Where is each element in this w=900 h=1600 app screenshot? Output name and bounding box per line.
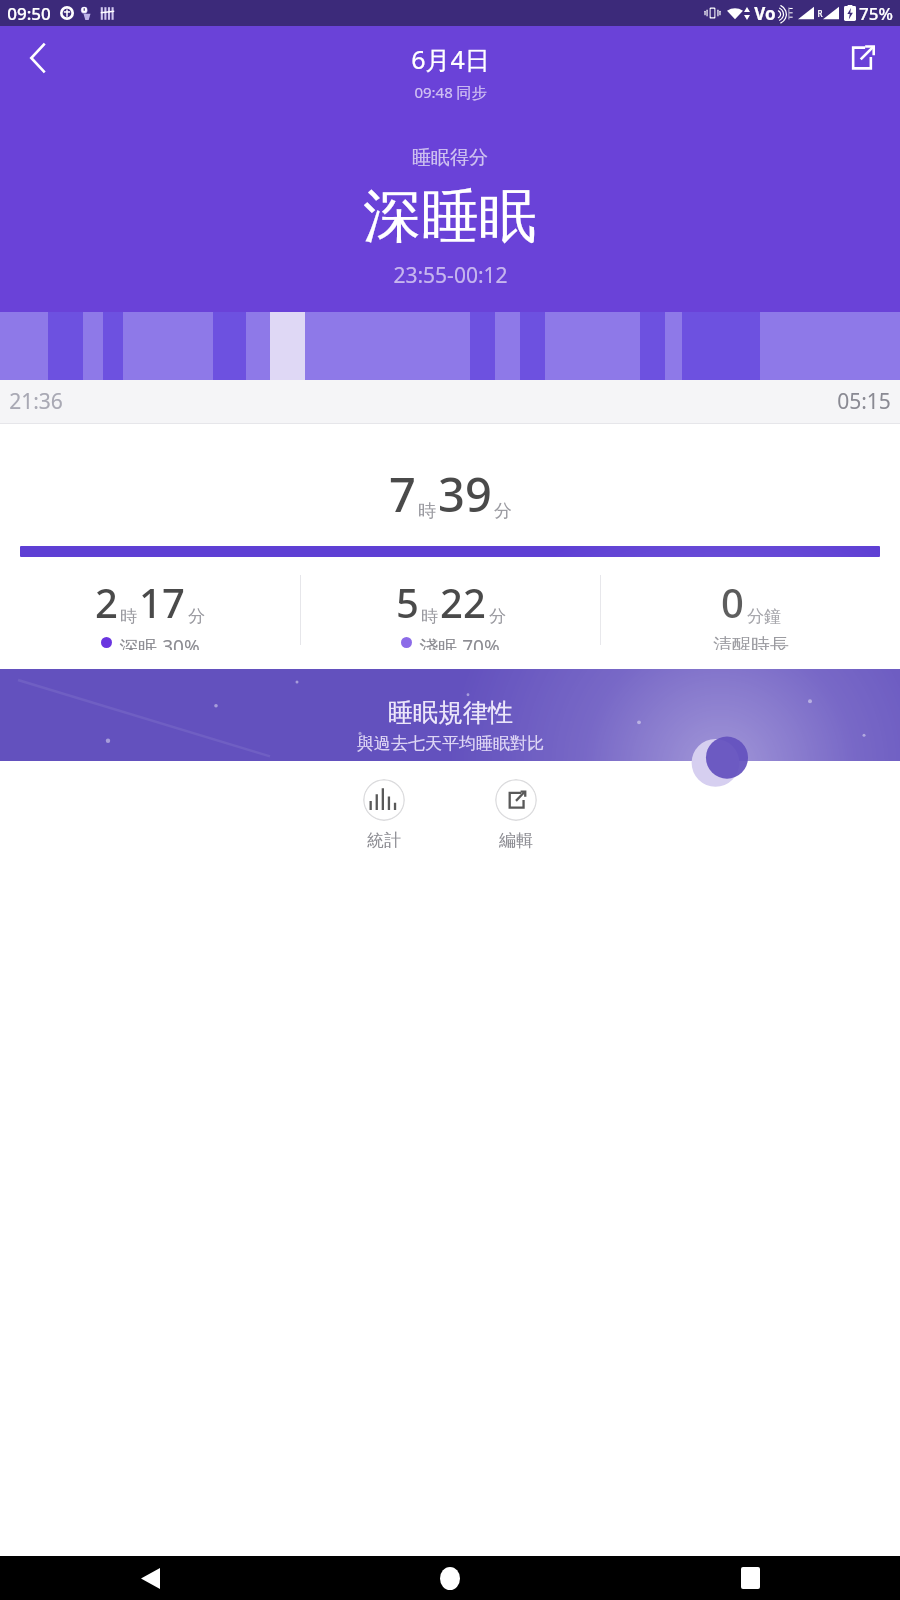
staticText: 統計 (367, 830, 401, 851)
button[interactable]: Back (0, 1556, 300, 1600)
button[interactable]: 編輯 (489, 779, 543, 851)
staticText: 17 (139, 575, 185, 629)
button[interactable]: 睡眠規律性 (0, 669, 900, 761)
button[interactable]: Recents (600, 1556, 900, 1600)
staticText: 分 (188, 606, 205, 627)
button[interactable]: Back (14, 34, 62, 82)
staticText: 淺眠 70% (419, 634, 500, 650)
button[interactable]: Home (300, 1556, 600, 1600)
staticText: 時 (418, 500, 436, 523)
staticText: Vo (754, 2, 776, 25)
staticText: 編輯 (499, 830, 533, 851)
staticText: 21:36 (9, 387, 63, 416)
button[interactable]: 2 (0, 575, 300, 650)
staticText: 22 (440, 575, 486, 629)
staticText: 清醒時長 (713, 634, 789, 650)
staticText: 09:50 (7, 2, 51, 25)
staticText: 深眠 30% (119, 634, 200, 650)
staticText: 6月4日 (411, 42, 490, 76)
staticText: 睡眠得分 (412, 146, 488, 170)
staticText: 75% (859, 2, 893, 25)
staticText: 與過去七天平均睡眠對比 (357, 733, 544, 754)
button[interactable]: 0 (601, 575, 900, 650)
staticText: 0 (721, 575, 744, 629)
staticText: 時 (120, 606, 137, 627)
staticText: 5 (396, 575, 419, 629)
staticText: 2 (95, 575, 118, 629)
staticText: 05:15 (837, 387, 891, 416)
staticText: 分 (489, 606, 506, 627)
staticText: 分 (494, 500, 512, 523)
staticText: 時 (421, 606, 438, 627)
button[interactable]: 統計 (357, 779, 411, 851)
staticText: 7 (389, 462, 416, 526)
staticText: 分鐘 (747, 606, 781, 627)
staticText: 睡眠規律性 (388, 697, 513, 728)
staticText: 09:48 同步 (414, 82, 487, 102)
staticText: 23:55-00:12 (393, 261, 508, 290)
button[interactable]: 5 (301, 575, 600, 650)
staticText: 深睡眠 (363, 180, 537, 253)
button[interactable]: Share (838, 34, 886, 82)
staticText: 39 (438, 462, 492, 526)
staticText: R (817, 8, 823, 19)
